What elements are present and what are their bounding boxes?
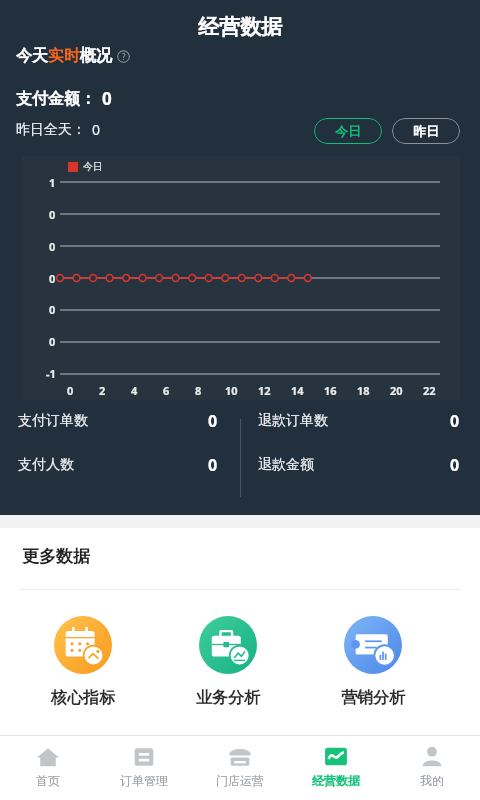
button[interactable]: 支付订单数: [0, 410, 240, 432]
other: 首页: [35, 744, 61, 770]
staticText: 16: [324, 383, 337, 398]
staticText: 0: [208, 410, 218, 432]
staticText: 支付人数: [18, 456, 74, 474]
staticText: 0: [102, 87, 112, 110]
staticText: 昨日全天：: [16, 121, 86, 139]
staticText: 今日: [83, 160, 103, 173]
staticText: 14: [291, 383, 304, 398]
staticText: 今天: [16, 46, 48, 66]
other: 经营数据: [323, 744, 349, 770]
staticText: 0: [92, 120, 101, 139]
button[interactable]: 今日: [314, 118, 382, 144]
button[interactable]: 营销分析: [300, 612, 445, 712]
button[interactable]: 我的: [384, 736, 480, 800]
staticText: 营销分析: [341, 688, 405, 708]
button[interactable]: 昨日: [392, 118, 460, 144]
staticText: 实时: [48, 46, 80, 66]
staticText: 业务分析: [196, 688, 260, 708]
staticText: 12: [258, 383, 271, 398]
button[interactable]: 订单管理: [96, 736, 192, 800]
staticText: 经营数据: [198, 14, 282, 40]
staticText: 核心指标: [51, 688, 115, 708]
staticText: 概况: [80, 46, 112, 66]
staticText: 4: [131, 383, 138, 398]
staticText: 0: [49, 302, 56, 317]
staticText: 订单管理: [120, 773, 168, 788]
staticText: 6: [163, 383, 170, 398]
staticText: 门店运营: [216, 773, 264, 788]
staticText: 2: [99, 383, 106, 398]
staticText: 22: [423, 383, 436, 398]
staticText: 昨日: [413, 123, 439, 139]
button[interactable]: 帮助: [117, 50, 130, 63]
button[interactable]: 经营数据: [288, 736, 384, 800]
button[interactable]: 首页: [0, 736, 96, 800]
staticText: 0: [49, 334, 56, 349]
button[interactable]: 核心指标: [10, 612, 155, 712]
other: 门店运营: [227, 744, 253, 770]
staticText: 18: [357, 383, 370, 398]
staticText: 更多数据: [22, 546, 90, 567]
staticText: -1: [46, 366, 56, 381]
button[interactable]: 门店运营: [192, 736, 288, 800]
staticText: 1: [49, 175, 56, 190]
staticText: 8: [195, 383, 202, 398]
button[interactable]: 退款金额: [240, 454, 480, 476]
staticText: 支付金额：: [16, 89, 96, 109]
staticText: ?: [122, 51, 126, 62]
staticText: 支付订单数: [18, 412, 88, 430]
staticText: 0: [450, 454, 460, 476]
button[interactable]: 业务分析: [155, 612, 300, 712]
staticText: 首页: [36, 773, 60, 788]
staticText: 0: [450, 410, 460, 432]
staticText: 退款金额: [258, 456, 314, 474]
other: 我的: [419, 744, 445, 770]
staticText: 0: [67, 383, 74, 398]
other: 订单管理: [131, 744, 157, 770]
staticText: 经营数据: [312, 773, 360, 788]
staticText: 我的: [420, 773, 444, 788]
staticText: 今日: [335, 123, 361, 139]
staticText: 20: [390, 383, 403, 398]
staticText: 0: [49, 239, 56, 254]
staticText: 0: [208, 454, 218, 476]
button[interactable]: 支付人数: [0, 454, 240, 476]
staticText: 0: [49, 207, 56, 222]
staticText: 退款订单数: [258, 412, 328, 430]
staticText: 10: [225, 383, 238, 398]
button[interactable]: 退款订单数: [240, 410, 480, 432]
staticText: 0: [49, 271, 56, 286]
